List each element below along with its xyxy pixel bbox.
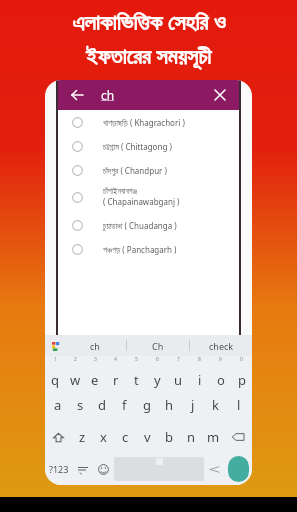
button[interactable]: d <box>91 389 113 421</box>
staticText: ইফতারের সময়সূচী <box>86 40 211 70</box>
button[interactable]: চাঁদপুর ( Chandpur ) <box>58 158 239 182</box>
button[interactable]: Clear <box>210 85 230 105</box>
button[interactable]: b <box>158 421 180 453</box>
staticText: m <box>207 428 220 446</box>
button[interactable]: n <box>180 421 202 453</box>
staticText: l <box>237 396 241 414</box>
button[interactable]: 7 <box>168 356 189 389</box>
button[interactable]: check <box>190 335 252 356</box>
button[interactable]: চাঁপাইনবাবগঞ্জ <box>58 182 239 213</box>
staticText: 1 <box>54 356 57 363</box>
staticText: x <box>100 428 107 446</box>
staticText: চাঁদপুর ( Chandpur ) <box>103 165 167 176</box>
staticText: o <box>217 371 225 389</box>
button[interactable]: Backspace <box>224 421 252 453</box>
staticText: k <box>212 396 219 414</box>
staticText: চট্টগ্রাম ( Chittagong ) <box>103 141 172 152</box>
staticText: খাগড়াছড়ি ( Khagrachori ) <box>103 117 185 128</box>
button[interactable]: Back <box>67 85 87 105</box>
button[interactable]: a <box>47 389 69 421</box>
staticText: 0 <box>240 356 243 363</box>
staticText: s <box>77 396 84 414</box>
button[interactable]: Emoji <box>93 453 114 485</box>
staticText: ( Chapainawabganj ) <box>103 196 180 207</box>
button[interactable]: Search <box>228 456 249 482</box>
button[interactable]: Language <box>72 453 93 485</box>
button[interactable]: 3 <box>85 356 105 389</box>
staticText: y <box>154 371 161 389</box>
staticText: b <box>165 428 173 446</box>
staticText: z <box>79 428 86 446</box>
button[interactable]: Period <box>204 453 225 485</box>
button[interactable]: z <box>72 421 93 453</box>
button[interactable]: k <box>204 389 227 421</box>
button[interactable]: c <box>114 421 136 453</box>
staticText: চুয়াডাঙ্গা ( Chuadanga ) <box>103 220 177 231</box>
button[interactable]: ch <box>63 335 126 356</box>
staticText: q <box>51 371 59 389</box>
staticText: p <box>238 371 246 389</box>
button[interactable]: ?123 <box>45 453 72 485</box>
staticText: n <box>187 428 196 446</box>
button[interactable]: x <box>93 421 114 453</box>
button[interactable]: 0 <box>231 356 252 389</box>
button[interactable]: Ch <box>127 335 189 356</box>
staticText: t <box>134 371 139 389</box>
staticText: check <box>209 340 234 352</box>
staticText: j <box>191 396 195 414</box>
button[interactable]: Google <box>49 339 63 353</box>
button[interactable]: 6 <box>147 356 168 389</box>
staticText: ?123 <box>49 463 69 475</box>
button[interactable]: 1 <box>45 356 65 389</box>
staticText: 3 <box>94 356 97 363</box>
staticText: 9 <box>219 356 222 363</box>
staticText: g <box>143 396 151 414</box>
staticText: ch <box>90 340 100 352</box>
button[interactable]: 2 <box>65 356 85 389</box>
staticText: u <box>174 371 183 389</box>
button[interactable]: 5 <box>126 356 147 389</box>
staticText: a <box>54 396 62 414</box>
staticText: 8 <box>198 356 201 363</box>
staticText: এলাকাভিত্তিক সেহরি ও <box>72 6 226 36</box>
staticText: f <box>122 396 127 414</box>
staticText: 6 <box>156 356 159 363</box>
button[interactable]: s <box>69 389 91 421</box>
button[interactable]: h <box>158 389 181 421</box>
button[interactable]: m <box>202 421 224 453</box>
staticText: 4 <box>114 356 117 363</box>
button[interactable]: f <box>113 389 135 421</box>
staticText: i <box>198 371 202 389</box>
staticText: c <box>122 428 129 446</box>
button[interactable]: চুয়াডাঙ্গা ( Chuadanga ) <box>58 213 239 237</box>
button[interactable]: 4 <box>105 356 126 389</box>
staticText: v <box>144 428 151 446</box>
staticText: d <box>98 396 106 414</box>
staticText: 5 <box>135 356 138 363</box>
button[interactable]: g <box>135 389 158 421</box>
staticText: Ch <box>152 340 164 352</box>
staticText: e <box>91 371 99 389</box>
staticText: r <box>113 371 119 389</box>
button[interactable]: 8 <box>189 356 210 389</box>
button[interactable]: v <box>136 421 158 453</box>
button[interactable]: পঞ্চগড় ( Panchagarh ) <box>58 237 239 261</box>
button[interactable]: Shift <box>45 421 72 453</box>
button[interactable]: খাগড়াছড়ি ( Khagrachori ) <box>58 110 239 134</box>
staticText: 7 <box>177 356 180 363</box>
staticText: ch <box>101 87 115 103</box>
staticText: h <box>165 396 174 414</box>
button[interactable]: l <box>227 389 250 421</box>
staticText: পঞ্চগড় ( Panchagarh ) <box>103 244 177 255</box>
staticText: চাঁপাইনবাবগঞ্জ <box>103 188 138 196</box>
button[interactable]: চট্টগ্রাম ( Chittagong ) <box>58 134 239 158</box>
button[interactable]: 9 <box>210 356 231 389</box>
button[interactable]: j <box>181 389 204 421</box>
staticText: w <box>70 371 81 389</box>
staticText: 2 <box>74 356 77 363</box>
